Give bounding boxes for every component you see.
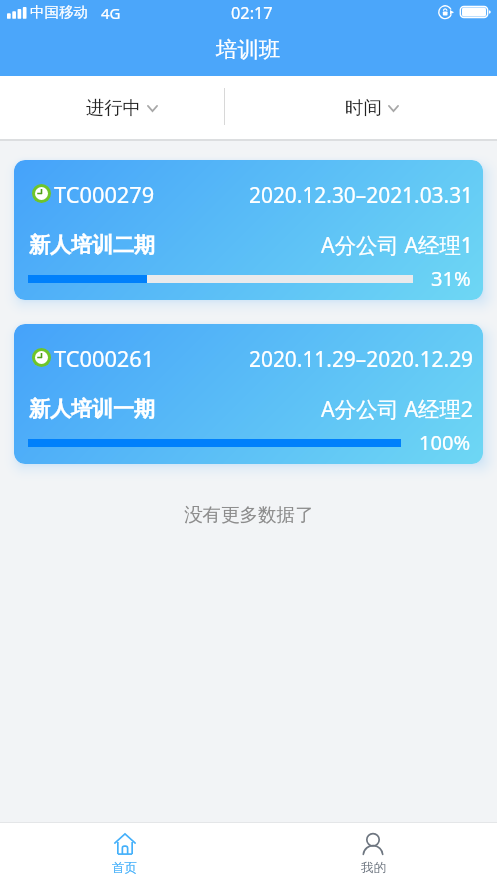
- staticText: 我的: [361, 860, 386, 876]
- staticText: 31%: [431, 265, 471, 292]
- other: Rotation lock: [435, 2, 457, 24]
- staticText: 进行中: [86, 96, 141, 119]
- staticText: 没有更多数据了: [184, 503, 314, 526]
- staticText: 时间: [345, 96, 382, 119]
- button[interactable]: TC000279: [14, 160, 483, 300]
- staticText: 新人培训二期: [29, 232, 155, 258]
- staticText: 100%: [419, 429, 471, 456]
- staticText: TC000279: [54, 180, 155, 210]
- staticText: 4G: [101, 3, 121, 23]
- staticText: 首页: [112, 860, 137, 876]
- staticText: 新人培训一期: [29, 396, 155, 422]
- staticText: 2020.11.29–2020.12.29: [249, 345, 474, 373]
- button[interactable]: Profile: [249, 823, 497, 883]
- staticText: 中国移动: [30, 3, 88, 21]
- button[interactable]: 时间: [248, 76, 497, 139]
- button[interactable]: 进行中: [0, 76, 248, 139]
- button[interactable]: TC000261: [14, 324, 483, 464]
- staticText: 02:17: [231, 2, 273, 24]
- staticText: TC000261: [54, 344, 155, 374]
- staticText: A分公司 A经理1: [321, 230, 474, 259]
- button[interactable]: Home: [0, 823, 249, 883]
- staticText: A分公司 A经理2: [321, 394, 474, 423]
- staticText: 培训班: [216, 36, 281, 63]
- staticText: 2020.12.30–2021.03.31: [249, 181, 474, 209]
